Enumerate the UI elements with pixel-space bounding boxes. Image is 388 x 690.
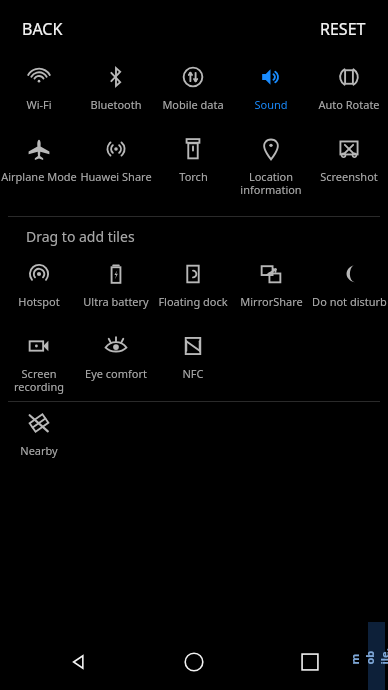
button[interactable]: Floating dock bbox=[154, 255, 232, 327]
button[interactable]: NFC bbox=[154, 327, 232, 399]
button[interactable]: Nearby bbox=[0, 404, 77, 476]
staticText: Auto Rotate bbox=[318, 97, 380, 112]
staticText: NFC bbox=[182, 366, 204, 381]
staticText: Nearby bbox=[20, 443, 58, 458]
button[interactable]: Home bbox=[156, 638, 232, 686]
button[interactable]: MirrorShare bbox=[232, 255, 310, 327]
button[interactable]: Recents bbox=[272, 638, 348, 686]
button[interactable]: Hotspot bbox=[0, 255, 77, 327]
staticText: Ultra battery bbox=[83, 294, 149, 309]
staticText: Eye comfort bbox=[85, 366, 147, 381]
staticText: MirrorShare bbox=[240, 294, 303, 309]
button[interactable]: Location information bbox=[232, 130, 310, 202]
button[interactable]: Ultra battery bbox=[77, 255, 154, 327]
button[interactable]: Torch bbox=[154, 130, 232, 202]
staticText: mobile.ir bbox=[346, 647, 388, 664]
button[interactable]: BACK bbox=[10, 10, 75, 48]
staticText: Torch bbox=[179, 169, 208, 184]
button[interactable]: Mobile data bbox=[154, 58, 232, 130]
button[interactable]: Eye comfort bbox=[77, 327, 154, 399]
button[interactable]: Auto Rotate bbox=[310, 58, 388, 130]
staticText: Huawei Share bbox=[80, 169, 152, 184]
button[interactable]: RESET bbox=[308, 10, 378, 48]
button[interactable]: Do not disturb bbox=[310, 255, 388, 327]
button[interactable]: Wi-Fi bbox=[0, 58, 77, 130]
button[interactable]: Airplane Mode bbox=[0, 130, 77, 202]
staticText: Sound bbox=[254, 97, 288, 112]
staticText: Hotspot bbox=[18, 294, 60, 309]
button[interactable]: Back bbox=[40, 638, 116, 686]
button[interactable]: Bluetooth bbox=[77, 58, 154, 130]
staticText: RESET bbox=[320, 18, 366, 40]
staticText: Wi-Fi bbox=[26, 97, 52, 112]
staticText: Screenshot bbox=[320, 169, 378, 184]
staticText: Location information bbox=[240, 169, 302, 197]
staticText: Airplane Mode bbox=[1, 169, 77, 184]
staticText: Mobile data bbox=[162, 97, 224, 112]
staticText: Floating dock bbox=[158, 294, 228, 309]
button[interactable]: Huawei Share bbox=[77, 130, 154, 202]
button[interactable]: Sound bbox=[232, 58, 310, 130]
button[interactable]: Screen recording bbox=[0, 327, 77, 399]
staticText: Bluetooth bbox=[90, 97, 142, 112]
button[interactable]: Screenshot bbox=[310, 130, 388, 202]
staticText: Do not disturb bbox=[312, 294, 387, 309]
staticText: Screen recording bbox=[14, 366, 64, 394]
staticText: Drag to add tiles bbox=[26, 227, 135, 246]
staticText: BACK bbox=[22, 18, 63, 40]
